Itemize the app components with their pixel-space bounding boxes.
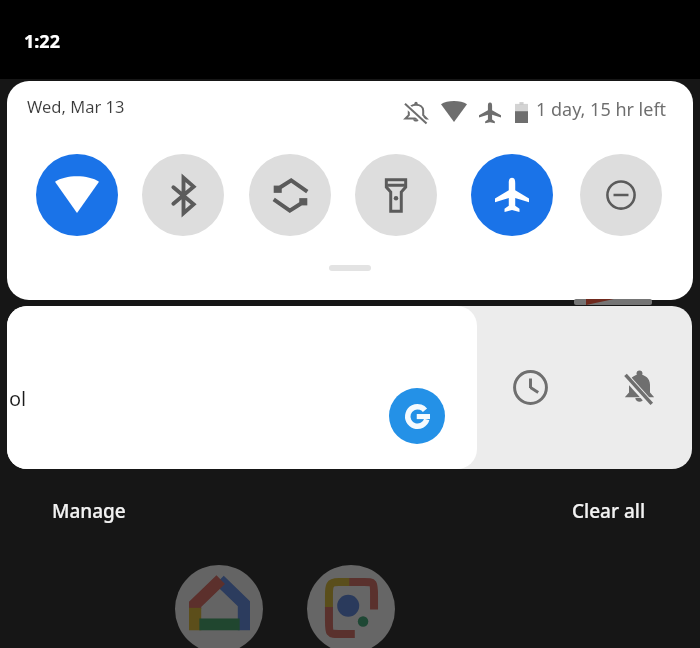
button[interactable]: Manage [30, 487, 148, 535]
button[interactable]: Google [389, 388, 445, 444]
button[interactable]: Snooze [502, 359, 558, 415]
staticText: Wed, Mar 13 [27, 95, 125, 117]
button[interactable]: Quick setting [580, 154, 662, 236]
button[interactable]: Quick setting [36, 154, 118, 236]
button[interactable]: ol [7, 306, 477, 469]
staticText: 1:22 [24, 29, 60, 54]
staticText: ol [9, 385, 27, 412]
button[interactable]: Quick setting [249, 154, 331, 236]
button[interactable]: Clear all [550, 487, 668, 535]
button[interactable]: Google Home [175, 565, 263, 648]
staticText: Manage [52, 498, 126, 524]
button[interactable]: Quick setting [355, 154, 437, 236]
button[interactable]: Quick setting [471, 154, 553, 236]
button[interactable]: Google Lens [307, 565, 395, 648]
button[interactable]: Quick setting [142, 154, 224, 236]
staticText: 1 day, 15 hr left [536, 97, 667, 122]
staticText: Clear all [572, 498, 646, 524]
button[interactable]: Silence [611, 359, 667, 415]
